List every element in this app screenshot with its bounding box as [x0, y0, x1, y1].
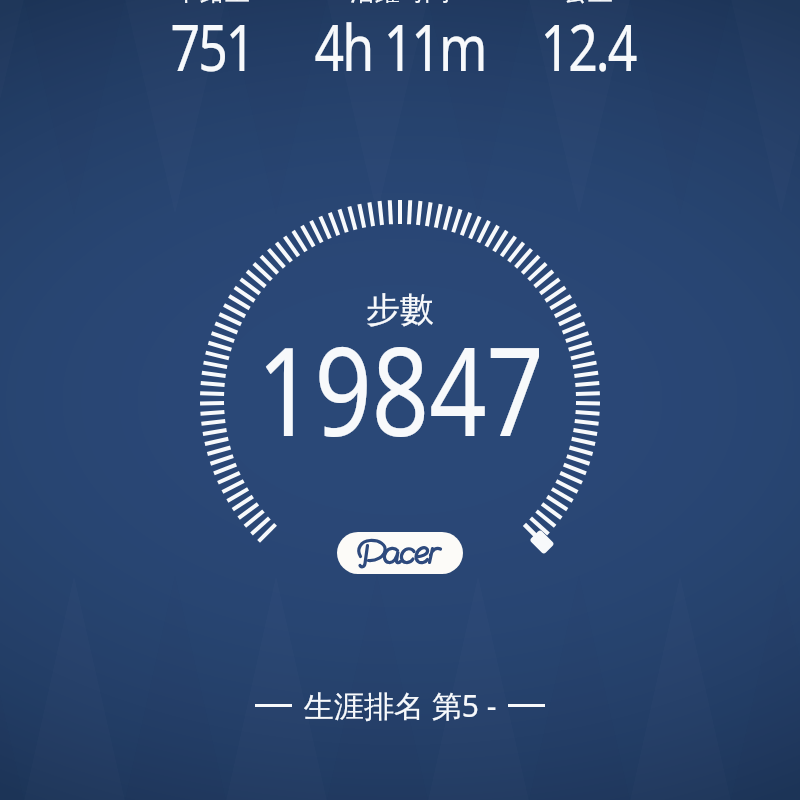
staticText: 公里: [563, 0, 613, 7]
staticText: 751: [97, 4, 327, 90]
staticText: 19847: [257, 306, 544, 472]
staticText: 生涯排名 第5 -: [304, 685, 497, 726]
button[interactable]: 活躍時間: [306, 0, 494, 7]
staticText: 4h 11m: [285, 4, 515, 90]
button[interactable]: 卡路里: [118, 0, 306, 7]
staticText: 卡路里: [175, 0, 250, 7]
button[interactable]: 生涯排名 第5 -: [304, 685, 497, 726]
staticText: 活躍時間: [350, 0, 450, 7]
button[interactable]: 公里: [494, 0, 682, 7]
staticText: 步數: [366, 288, 434, 331]
staticText: 12.4: [473, 4, 703, 90]
button[interactable]: [337, 532, 463, 574]
